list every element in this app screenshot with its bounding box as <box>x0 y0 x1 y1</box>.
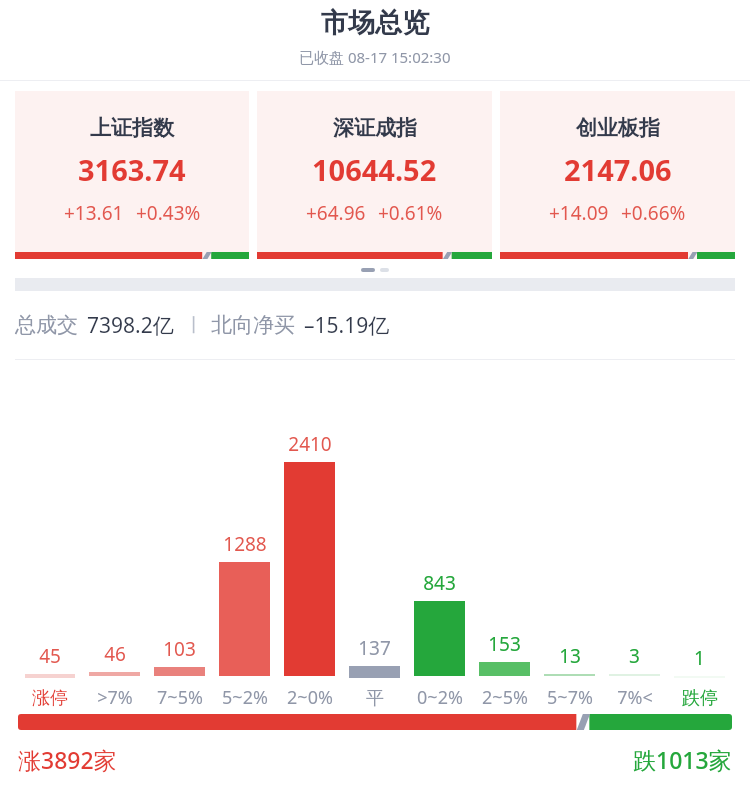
button[interactable]: Page 1 <box>361 268 375 272</box>
button[interactable]: Page 2 <box>380 268 389 272</box>
button[interactable]: 103 <box>147 636 212 710</box>
staticText: 跌1013家 <box>633 744 732 775</box>
staticText: +64.96 <box>306 200 366 226</box>
button[interactable]: 1 <box>667 645 732 710</box>
button[interactable]: 上证指数 <box>15 91 249 259</box>
staticText: 3163.74 <box>78 150 186 189</box>
button[interactable]: 2410 <box>277 431 342 710</box>
staticText: 平 <box>366 687 384 710</box>
staticText: +0.61% <box>378 200 443 226</box>
button[interactable]: 46 <box>82 641 147 710</box>
staticText: 7398.2亿 <box>87 311 174 340</box>
staticText: +13.61 <box>64 200 124 226</box>
button[interactable]: 45 <box>18 643 82 710</box>
staticText: 103 <box>163 636 196 662</box>
staticText: 市场总览 <box>321 6 429 40</box>
staticText: +0.66% <box>621 200 686 226</box>
staticText: 涨停 <box>32 687 68 710</box>
staticText: 2~0% <box>287 685 333 710</box>
staticText: 已收盘 08-17 15:02:30 <box>299 47 451 67</box>
staticText: 153 <box>488 631 521 657</box>
staticText: 5~7% <box>547 685 593 710</box>
staticText: 45 <box>39 643 61 669</box>
staticText: 总成交 <box>15 312 78 338</box>
button[interactable]: 1288 <box>212 531 277 710</box>
staticText: 创业板指 <box>576 115 660 141</box>
button[interactable]: 137 <box>342 635 407 710</box>
staticText: 5~2% <box>222 685 268 710</box>
staticText: 1 <box>694 645 705 671</box>
button[interactable]: 深证成指 <box>257 91 492 259</box>
staticText: 2147.06 <box>564 150 672 189</box>
staticText: 2~5% <box>482 685 528 710</box>
staticText: 13 <box>559 643 581 669</box>
button[interactable]: 843 <box>407 570 472 710</box>
staticText: 3 <box>629 643 640 669</box>
staticText: 843 <box>423 570 456 596</box>
staticText: 0~2% <box>417 685 463 710</box>
button[interactable]: 3 <box>602 643 667 710</box>
staticText: 1288 <box>223 531 267 557</box>
button[interactable]: 总成交 <box>15 291 735 359</box>
button[interactable]: 153 <box>472 631 537 710</box>
staticText: 2410 <box>288 431 332 457</box>
staticText: 137 <box>358 635 391 661</box>
staticText: >7% <box>97 685 133 710</box>
staticText: 丨 <box>185 314 203 337</box>
staticText: 7%< <box>617 685 653 710</box>
staticText: 北向净买 <box>211 312 295 338</box>
button[interactable]: 13 <box>537 643 602 710</box>
staticText: 上证指数 <box>90 115 174 141</box>
staticText: 10644.52 <box>312 150 437 189</box>
staticText: 跌停 <box>682 687 718 710</box>
staticText: +0.43% <box>136 200 201 226</box>
staticText: 46 <box>104 641 126 667</box>
staticText: +14.09 <box>549 200 609 226</box>
button[interactable]: 创业板指 <box>500 91 735 259</box>
staticText: 涨3892家 <box>18 744 117 775</box>
staticText: 深证成指 <box>333 115 417 141</box>
staticText: –15.19亿 <box>304 311 390 340</box>
staticText: 7~5% <box>157 685 203 710</box>
